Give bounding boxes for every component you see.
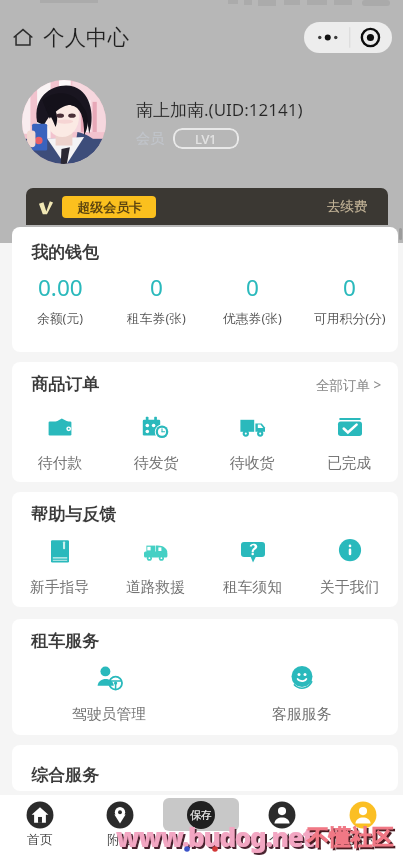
button[interactable]: 驾驶员管理 xyxy=(12,663,205,724)
staticText: 首页 xyxy=(27,831,53,847)
staticText: 不懂社区 xyxy=(307,824,393,851)
staticText: 个人中心 xyxy=(43,24,129,51)
button[interactable]: Home xyxy=(11,25,35,49)
staticText: 超级会员卡 xyxy=(77,199,142,215)
staticText: www.budog.net xyxy=(118,821,316,856)
staticText: 租车服务 xyxy=(31,631,99,652)
staticText: 优惠券(张) xyxy=(223,309,282,326)
staticText: 关于我们 xyxy=(320,578,380,597)
staticText: 余额(元) xyxy=(37,309,84,326)
staticText: LV1 xyxy=(195,130,217,148)
staticText: 租车券(张) xyxy=(127,309,186,326)
staticText: 保存 xyxy=(190,808,212,822)
staticText: 可用积分(分) xyxy=(314,309,386,326)
staticText: 道路救援 xyxy=(126,578,186,597)
button[interactable]: Avatar xyxy=(22,80,106,164)
button[interactable]: 待发货 xyxy=(108,412,204,473)
button[interactable]: 首页 xyxy=(0,795,80,860)
staticText: 综合服务 xyxy=(31,765,99,786)
button[interactable]: 0 xyxy=(108,272,204,326)
button[interactable]: 0 xyxy=(204,272,301,326)
staticText: 待付款 xyxy=(38,454,83,473)
staticText: 商品订单 xyxy=(31,374,99,395)
staticText: 0 xyxy=(343,272,356,303)
staticText: 南上加南.(UID:12141) xyxy=(136,98,303,121)
staticText: 全部订单 > xyxy=(316,376,382,394)
staticText: 不懂社区 xyxy=(309,826,395,853)
button[interactable]: 待收货 xyxy=(204,412,301,473)
button[interactable]: 0 xyxy=(301,272,398,326)
staticText: 我的 xyxy=(350,831,376,847)
button[interactable]: 道路救援 xyxy=(108,536,204,597)
staticText: 0 xyxy=(150,272,163,303)
staticText: 客服服务 xyxy=(272,705,332,724)
button[interactable]: 我的 xyxy=(322,795,403,860)
button[interactable]: 新手指导 xyxy=(12,536,108,597)
staticText: 已完成 xyxy=(327,454,372,473)
staticText: 待发货 xyxy=(134,454,179,473)
staticText: 待收货 xyxy=(230,454,275,473)
button[interactable]: 全部订单 > xyxy=(316,376,382,394)
staticText: 新手指导 xyxy=(30,578,90,597)
button[interactable]: 保存 xyxy=(163,798,239,831)
button[interactable]: 待付款 xyxy=(12,412,108,473)
staticText: 0 xyxy=(246,272,259,303)
staticText: 0.00 xyxy=(38,272,83,303)
staticText: www.budog.net xyxy=(116,819,314,854)
staticText: 附近 xyxy=(107,831,133,847)
button[interactable]: 关于我们 xyxy=(301,536,398,597)
staticText: 租车须知 xyxy=(223,578,283,597)
staticText: 驾驶员管理 xyxy=(72,705,146,724)
button[interactable]: 客服服务 xyxy=(205,663,398,724)
button[interactable]: LV1 xyxy=(173,128,239,149)
button[interactable]: 0.00 xyxy=(12,272,108,326)
staticText: 我的钱包 xyxy=(31,242,99,263)
staticText: 帮助与反馈 xyxy=(31,504,116,525)
button[interactable]: 已完成 xyxy=(301,412,398,473)
button[interactable]: 超级会员卡 xyxy=(26,188,388,225)
staticText: 会员 xyxy=(136,130,164,148)
staticText: 个人 xyxy=(269,831,295,847)
button[interactable]: 租车须知 xyxy=(204,536,301,597)
staticText: 去续费 xyxy=(327,198,368,215)
button[interactable]: 附近 xyxy=(80,795,160,860)
button[interactable]: 个人 xyxy=(241,795,322,860)
button[interactable]: Menu xyxy=(304,22,392,53)
